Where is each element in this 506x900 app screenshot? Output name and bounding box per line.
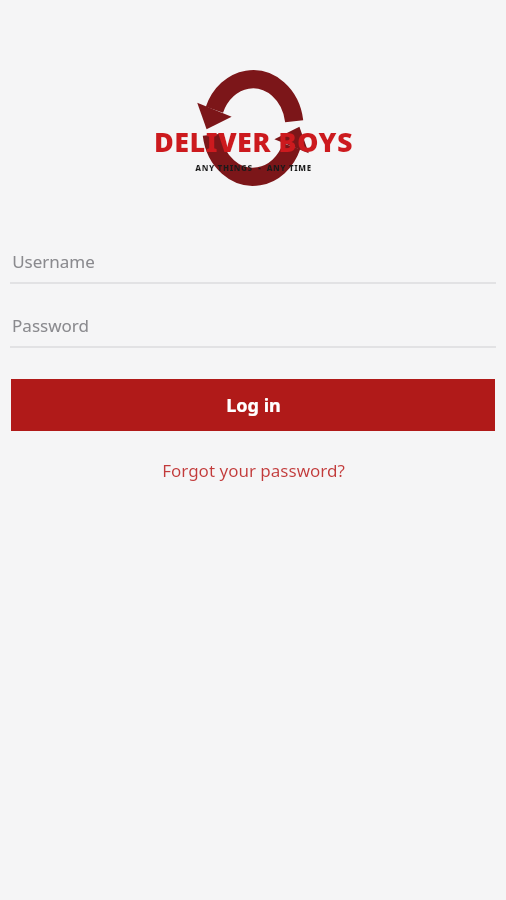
staticText: Username	[12, 250, 95, 273]
button[interactable]: Forgot your password?	[0, 453, 506, 487]
staticText: Password	[12, 314, 89, 337]
button[interactable]: Password	[0, 312, 506, 348]
staticText: ANY THINGS - ANY TIME	[195, 162, 312, 173]
staticText: Log in	[226, 393, 281, 418]
button[interactable]: Log in	[11, 379, 495, 431]
staticText: DELIVER BOYS	[154, 123, 353, 160]
staticText: Forgot your password?	[162, 459, 345, 482]
button[interactable]: Username	[0, 248, 506, 284]
